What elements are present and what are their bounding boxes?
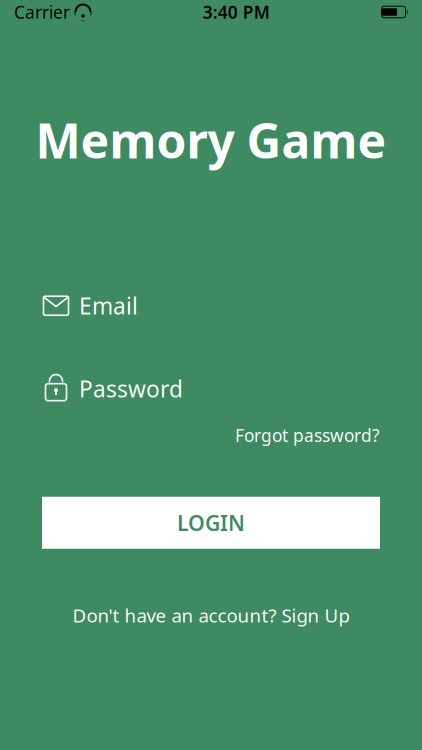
button[interactable]: LOGIN: [42, 497, 380, 549]
staticText: Carrier: [14, 0, 70, 23]
staticText: 3:40 PM: [203, 0, 270, 23]
button[interactable]: Password: [0, 372, 422, 406]
button[interactable]: Don't have an account? Sign Up: [72, 598, 349, 633]
staticText: Password: [79, 374, 183, 404]
staticText: Forgot password?: [235, 424, 380, 447]
staticText: LOGIN: [177, 509, 245, 537]
staticText: Don't have an account? Sign Up: [72, 603, 349, 628]
staticText: Memory Game: [35, 108, 386, 172]
staticText: Email: [79, 291, 138, 321]
button[interactable]: Email: [0, 289, 422, 323]
button[interactable]: Forgot password?: [235, 420, 380, 451]
